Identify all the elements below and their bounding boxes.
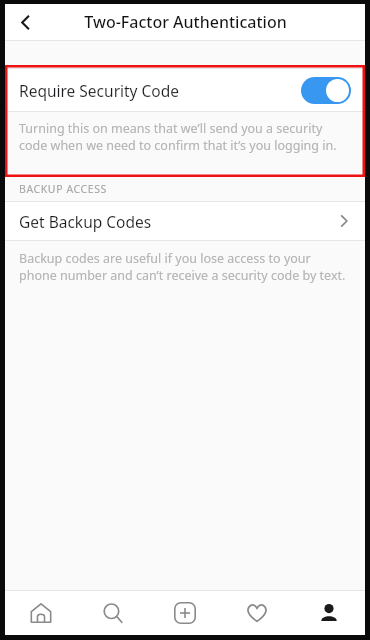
staticText: Get Backup Codes — [19, 211, 152, 232]
button[interactable]: Activity — [221, 591, 293, 635]
staticText: Require Security Code — [19, 80, 180, 101]
button[interactable]: Profile — [293, 591, 365, 635]
button[interactable]: Search — [77, 591, 149, 635]
staticText: BACKUP ACCESS — [19, 182, 107, 196]
button[interactable]: Home — [5, 591, 77, 635]
button[interactable]: Require Security Code — [5, 69, 365, 111]
button[interactable]: Back — [5, 4, 45, 40]
staticText: Backup codes are useful if you lose acce… — [19, 250, 349, 284]
button[interactable]: Get Backup Codes — [5, 202, 365, 240]
button[interactable]: Add post — [149, 591, 221, 635]
staticText: Two-Factor Authentication — [84, 11, 287, 33]
button[interactable]: Require Security Code toggle — [301, 77, 351, 104]
staticText: Turning this on means that we’ll send yo… — [19, 120, 347, 154]
